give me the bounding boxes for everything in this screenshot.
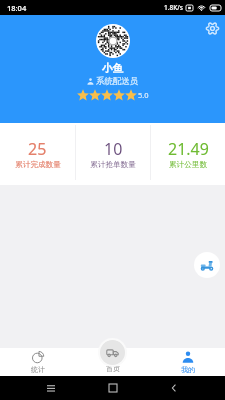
- staticText: 系统配送员: [96, 76, 139, 87]
- staticText: 首页: [106, 364, 120, 373]
- staticText: 10: [104, 138, 123, 160]
- button[interactable]: Profile: [150, 348, 225, 376]
- staticText: 累计抢单数量: [90, 160, 136, 170]
- staticText: 5.0: [138, 90, 149, 100]
- button[interactable]: Home: [98, 338, 127, 367]
- button[interactable]: 首页: [75, 348, 150, 376]
- button[interactable]: 25: [0, 123, 75, 185]
- staticText: 1.8K/s: [164, 3, 183, 12]
- staticText: 18:04: [7, 3, 27, 13]
- staticText: 统计: [31, 365, 45, 374]
- button[interactable]: Home: [103, 378, 123, 398]
- button[interactable]: Statistics: [0, 348, 75, 376]
- button[interactable]: Settings: [201, 17, 223, 39]
- staticText: 25: [28, 138, 47, 160]
- staticText: 小鱼: [102, 62, 123, 75]
- staticText: 累计完成数量: [15, 160, 61, 170]
- staticText: 21.49: [168, 138, 209, 160]
- staticText: 我的: [181, 365, 195, 374]
- button[interactable]: 21.49: [151, 123, 225, 185]
- staticText: 累计公里数: [169, 160, 207, 170]
- button[interactable]: 10: [76, 123, 150, 185]
- button[interactable]: Menu: [41, 378, 61, 398]
- button[interactable]: Start delivery: [194, 252, 220, 278]
- button[interactable]: Back: [164, 378, 184, 398]
